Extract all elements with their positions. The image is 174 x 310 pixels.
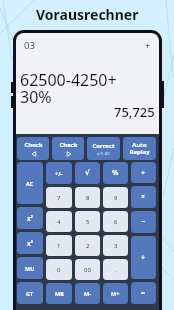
button[interactable]: +/- xyxy=(46,162,72,184)
staticText: AC xyxy=(26,180,34,187)
staticText: × xyxy=(141,192,146,202)
button[interactable]: √ xyxy=(75,162,100,184)
staticText: 2 xyxy=(86,242,90,250)
button[interactable]: 9 xyxy=(103,187,128,208)
staticText: 9 xyxy=(114,194,118,202)
button[interactable]: X³ xyxy=(17,232,43,254)
button[interactable]: M+ xyxy=(103,283,128,304)
staticText: Check xyxy=(24,141,43,149)
button[interactable]: X² xyxy=(17,207,43,229)
button[interactable]: + xyxy=(131,236,156,279)
staticText: GT xyxy=(26,290,34,297)
button[interactable]: MU xyxy=(17,257,43,279)
button[interactable]: × xyxy=(131,186,156,208)
button[interactable]: AC xyxy=(17,162,43,204)
staticText: Check xyxy=(59,141,78,149)
staticText: M- xyxy=(84,290,91,297)
staticText: 5 xyxy=(86,218,90,226)
staticText: M+ xyxy=(111,290,120,297)
staticText: + xyxy=(145,39,151,51)
button[interactable]: = xyxy=(131,282,156,304)
button[interactable]: MR xyxy=(46,283,72,304)
staticText: ⌀ 0 .00 xyxy=(97,151,110,156)
staticText: % xyxy=(112,168,119,178)
staticText: 4 xyxy=(57,218,61,226)
staticText: Vorausrechner xyxy=(36,5,139,24)
staticText: 75,725 xyxy=(114,103,155,121)
staticText: 00 xyxy=(84,266,91,274)
button[interactable]: 1 xyxy=(46,235,72,256)
button[interactable]: 5 xyxy=(75,211,100,232)
button[interactable]: % xyxy=(103,162,128,184)
staticText: MR xyxy=(55,290,64,297)
button[interactable]: M- xyxy=(75,283,100,304)
button[interactable]: GT xyxy=(17,282,43,304)
staticText: Correct xyxy=(92,142,115,150)
staticText: Auto Replay xyxy=(129,141,150,156)
button[interactable]: 7 xyxy=(46,187,72,208)
button[interactable]: Check xyxy=(17,137,49,160)
button[interactable]: 0 xyxy=(46,259,72,280)
button[interactable]: 3 xyxy=(103,235,128,256)
button[interactable]: Auto Replay xyxy=(123,137,156,160)
button[interactable]: 8 xyxy=(75,187,100,208)
staticText: 8 xyxy=(86,194,90,202)
button[interactable]: − xyxy=(131,211,156,233)
staticText: + xyxy=(141,253,146,263)
staticText: X³ xyxy=(27,240,33,247)
staticText: 62500-4250+ 30% xyxy=(20,69,117,108)
staticText: . xyxy=(115,266,117,274)
staticText: 7 xyxy=(57,194,61,202)
button[interactable]: 2 xyxy=(75,235,100,256)
staticText: 6 xyxy=(114,218,118,226)
button[interactable]: 4 xyxy=(46,211,72,232)
staticText: 3 xyxy=(114,242,118,250)
staticText: +/- xyxy=(55,170,63,177)
staticText: MU xyxy=(25,265,35,272)
staticText: 03 xyxy=(24,39,35,52)
staticText: ÷ xyxy=(141,168,146,178)
staticText: − xyxy=(141,217,146,227)
staticText: X² xyxy=(27,215,33,222)
button[interactable]: Check xyxy=(52,137,84,160)
button[interactable]: 6 xyxy=(103,211,128,232)
staticText: √ xyxy=(85,169,90,177)
button[interactable]: . xyxy=(103,259,128,280)
button[interactable]: ÷ xyxy=(131,162,156,183)
button[interactable]: 00 xyxy=(75,259,100,280)
staticText: 0 xyxy=(57,266,61,274)
button[interactable]: Correct xyxy=(87,137,120,160)
staticText: = xyxy=(141,288,146,298)
staticText: 1 xyxy=(57,242,61,250)
